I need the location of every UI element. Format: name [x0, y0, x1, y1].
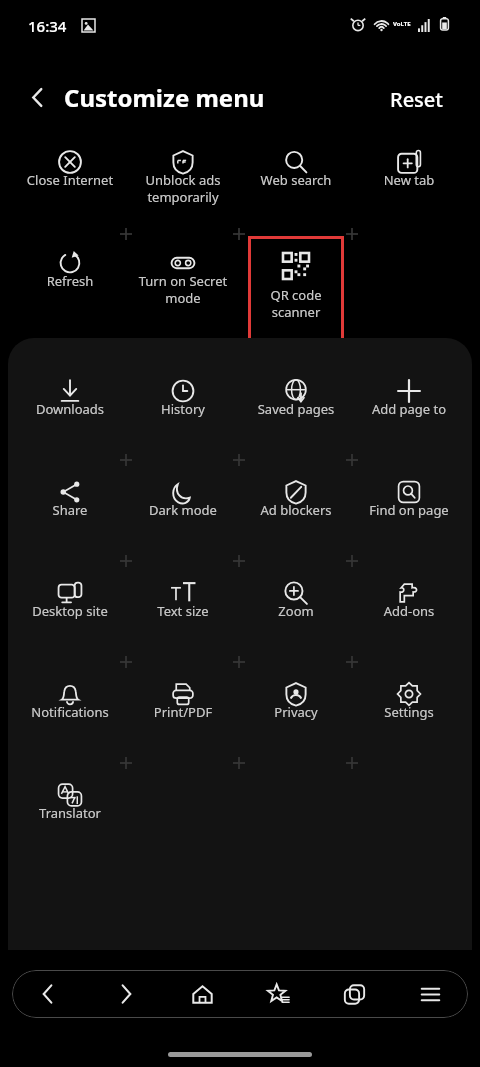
- button[interactable]: Customize menu: [64, 81, 265, 114]
- button[interactable]: Print/PDF: [127, 671, 239, 745]
- staticText: Unblock ads temporarily: [127, 171, 239, 206]
- button[interactable]: New tab: [353, 139, 465, 213]
- button[interactable]: Home: [172, 970, 232, 1018]
- staticText: New tab: [353, 171, 465, 189]
- button[interactable]: QR code scanner: [248, 236, 344, 342]
- staticText: Translator: [14, 804, 126, 822]
- staticText: Web search: [240, 171, 352, 189]
- staticText: History: [127, 400, 239, 418]
- button[interactable]: Back: [18, 78, 56, 116]
- button[interactable]: Desktop site: [14, 570, 126, 644]
- staticText: Text size: [127, 602, 239, 620]
- button[interactable]: Unblock ads temporarily: [127, 139, 239, 213]
- button[interactable]: Menu: [400, 970, 460, 1018]
- button[interactable]: Dark mode: [127, 469, 239, 543]
- staticText: Privacy: [240, 703, 352, 721]
- button[interactable]: Downloads: [14, 368, 126, 442]
- button[interactable]: Close Internet: [14, 139, 126, 213]
- staticText: Ad blockers: [240, 501, 352, 519]
- button[interactable]: Back: [18, 970, 78, 1018]
- staticText: Downloads: [14, 400, 126, 418]
- button[interactable]: Privacy: [240, 671, 352, 745]
- button[interactable]: Add-ons: [353, 570, 465, 644]
- button[interactable]: Ad blockers: [240, 469, 352, 543]
- button[interactable]: History: [127, 368, 239, 442]
- button[interactable]: Forward: [96, 970, 156, 1018]
- button[interactable]: Text size: [127, 570, 239, 644]
- staticText: Saved pages: [240, 400, 352, 418]
- staticText: Close Internet: [14, 171, 126, 189]
- staticText: Dark mode: [127, 501, 239, 519]
- staticText: QR code scanner: [248, 286, 344, 321]
- button[interactable]: Web search: [240, 139, 352, 213]
- button[interactable]: Add page to: [353, 368, 465, 442]
- staticText: Find on page: [353, 501, 465, 519]
- staticText: Desktop site: [14, 602, 126, 620]
- button[interactable]: Settings: [353, 671, 465, 745]
- staticText: Share: [14, 501, 126, 519]
- staticText: VoLTE: [393, 20, 411, 28]
- button[interactable]: Reset: [390, 86, 443, 113]
- button[interactable]: Share: [14, 469, 126, 543]
- staticText: Reset: [390, 86, 443, 113]
- button[interactable]: Find on page: [353, 469, 465, 543]
- button[interactable]: Refresh: [14, 240, 126, 314]
- staticText: Add page to: [353, 400, 465, 418]
- staticText: Print/PDF: [127, 703, 239, 721]
- staticText: 16:34: [28, 16, 67, 36]
- staticText: Turn on Secret mode: [127, 272, 239, 307]
- staticText: Notifications: [14, 703, 126, 721]
- staticText: Add-ons: [353, 602, 465, 620]
- button[interactable]: Bookmarks: [248, 970, 308, 1018]
- staticText: Settings: [353, 703, 465, 721]
- button[interactable]: Zoom: [240, 570, 352, 644]
- button[interactable]: Turn on Secret mode: [127, 240, 239, 314]
- button[interactable]: Tabs: [324, 970, 384, 1018]
- staticText: Zoom: [240, 602, 352, 620]
- button[interactable]: Saved pages: [240, 368, 352, 442]
- button[interactable]: Translator: [14, 772, 126, 846]
- staticText: Refresh: [14, 272, 126, 290]
- button[interactable]: Notifications: [14, 671, 126, 745]
